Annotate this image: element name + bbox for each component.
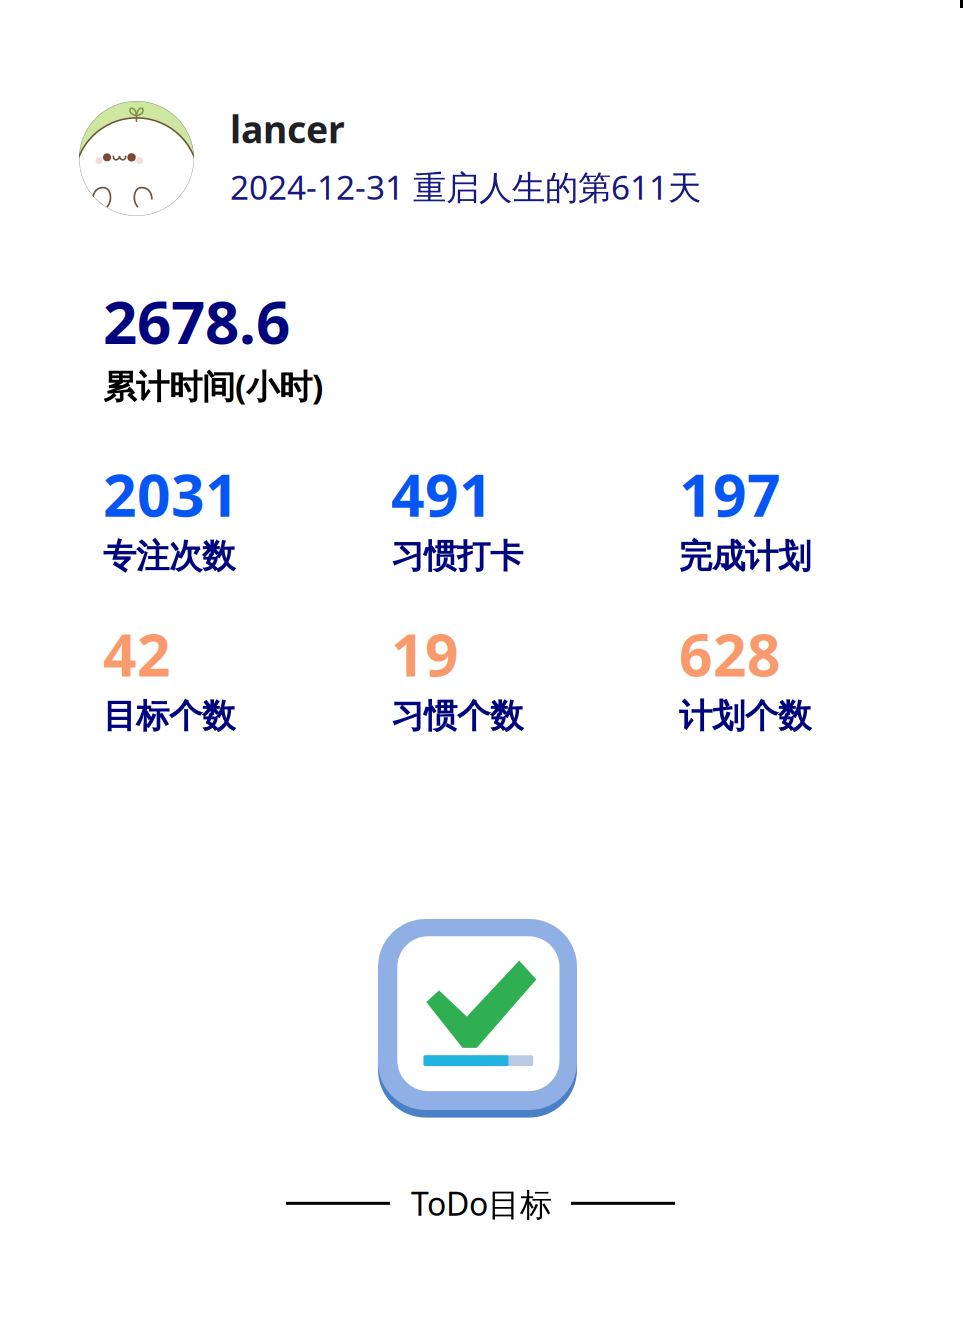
button[interactable]: ToDo目标 app icon [378,915,577,1114]
staticText: 计划个数 [679,696,811,737]
staticText: 42 [103,615,171,693]
staticText: 累计时间(小时) [103,364,323,408]
staticText: 完成计划 [679,536,811,577]
staticText: 19 [391,615,459,693]
button[interactable]: lancer [230,104,701,209]
staticText: 习惯打卡 [391,536,523,577]
staticText: 目标个数 [103,696,235,737]
staticText: 197 [679,455,781,533]
staticText: 2024-12-31 重启人生的第611天 [230,165,701,209]
button[interactable]: Profile photo [79,101,194,216]
staticText: 491 [391,455,493,533]
staticText: 习惯个数 [391,696,523,737]
staticText: 2031 [103,455,239,533]
staticText: ToDo目标 [411,1182,552,1225]
staticText: 专注次数 [103,536,235,577]
staticText: 2678.6 [103,281,290,361]
staticText: lancer [230,104,345,154]
staticText: 628 [679,615,781,693]
